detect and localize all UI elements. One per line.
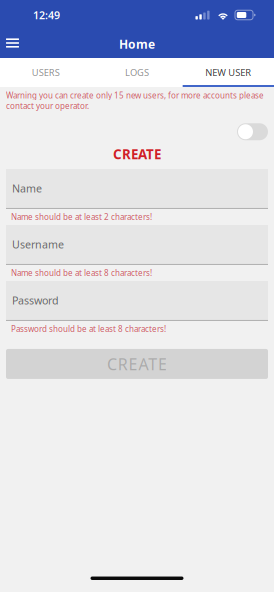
button[interactable]: NEW USER bbox=[183, 58, 274, 87]
button[interactable]: Enable creation bbox=[237, 123, 268, 140]
staticText: CREATE bbox=[113, 145, 161, 163]
button[interactable]: USERS bbox=[0, 58, 91, 87]
staticText: Username bbox=[12, 237, 64, 252]
staticText: Password bbox=[12, 293, 59, 308]
staticText: 12:49 bbox=[33, 8, 60, 22]
staticText: NEW USER bbox=[205, 66, 251, 79]
staticText: Name bbox=[12, 181, 42, 196]
staticText: Name should be at least 8 characters! bbox=[11, 268, 152, 278]
button[interactable]: Menu bbox=[1, 31, 24, 55]
staticText: LOGS bbox=[125, 66, 149, 79]
staticText: CREATE bbox=[107, 353, 167, 374]
staticText: USERS bbox=[32, 66, 60, 79]
staticText: Warning you can create only 15 new users… bbox=[6, 90, 264, 111]
staticText: Home bbox=[119, 36, 155, 52]
button[interactable]: LOGS bbox=[91, 58, 183, 87]
button[interactable]: CREATE bbox=[6, 349, 268, 379]
staticText: Name should be at least 2 characters! bbox=[11, 212, 152, 222]
staticText: Password should be at least 8 characters… bbox=[11, 324, 166, 334]
